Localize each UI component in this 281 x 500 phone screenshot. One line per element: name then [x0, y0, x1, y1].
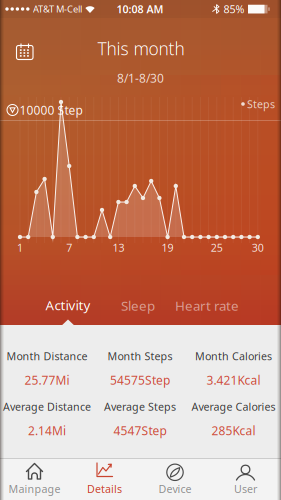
staticText: Activity: [45, 296, 90, 314]
staticText: 19: [162, 240, 174, 255]
staticText: Month Calories: [195, 349, 272, 363]
staticText: Details: [87, 482, 122, 496]
staticText: User: [234, 482, 257, 496]
staticText: Steps: [247, 97, 275, 111]
staticText: 30: [252, 240, 264, 255]
staticText: Month Distance: [6, 349, 87, 363]
staticText: 54575Step: [110, 372, 170, 388]
staticText: Month Steps: [107, 349, 172, 363]
staticText: This month: [97, 37, 184, 60]
staticText: Average Calories: [191, 399, 275, 414]
staticText: 7: [66, 240, 72, 255]
staticText: Average Distance: [3, 399, 91, 414]
staticText: 2.14Mi: [28, 422, 66, 438]
staticText: 85%: [223, 2, 244, 16]
staticText: AT&T M-Cell: [33, 3, 82, 15]
staticText: Heart rate: [175, 297, 239, 314]
staticText: Average Steps: [104, 399, 176, 414]
staticText: 1: [17, 240, 23, 255]
staticText: 4547Step: [113, 422, 166, 438]
staticText: 13: [112, 240, 124, 255]
staticText: 10000 Step: [19, 102, 82, 118]
staticText: 25.77Mi: [24, 372, 69, 388]
staticText: 10:08 AM: [116, 2, 163, 16]
staticText: 25: [211, 240, 223, 255]
staticText: 285Kcal: [211, 422, 255, 438]
staticText: 8/1-8/30: [117, 70, 164, 86]
staticText: 3.421Kcal: [206, 372, 260, 388]
staticText: Mainpage: [8, 482, 60, 496]
staticText: Device: [158, 482, 191, 496]
staticText: Sleep: [121, 297, 155, 314]
